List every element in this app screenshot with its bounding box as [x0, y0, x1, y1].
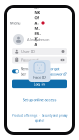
button[interactable]: Log in	[12, 80, 67, 88]
staticText: ·	[39, 114, 40, 117]
staticText: Security and privacy	[42, 114, 67, 117]
staticText: Español	[34, 119, 44, 123]
staticText: Set up online access	[22, 97, 56, 102]
button[interactable]: Security and privacy	[42, 114, 67, 117]
staticText: Face ID	[33, 75, 46, 80]
staticText: BANK OF AMERICA	[34, 0, 40, 47]
staticText: Remember	[20, 66, 35, 77]
staticText: Product offerings	[12, 114, 37, 117]
staticText: Forgot password?	[48, 66, 67, 77]
button[interactable]: Set up online access	[22, 97, 56, 102]
button[interactable]: Forgot password?	[48, 66, 67, 77]
staticText: Log in	[33, 81, 45, 86]
staticText: Alex Johnson	[27, 37, 49, 42]
staticText: Password	[21, 57, 38, 63]
button[interactable]: Remember	[12, 66, 35, 77]
button[interactable]: Menu	[10, 18, 26, 27]
staticText: Menu	[10, 20, 20, 26]
button[interactable]: Product offerings	[12, 114, 37, 117]
button[interactable]: Español	[34, 119, 44, 123]
staticText: User ID	[21, 49, 35, 54]
